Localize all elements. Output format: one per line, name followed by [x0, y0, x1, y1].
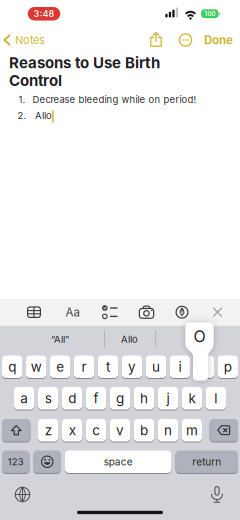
- button[interactable]: space: [65, 450, 171, 473]
- button[interactable]: Share: [150, 32, 162, 47]
- button[interactable]: return: [175, 450, 238, 473]
- button[interactable]: Screen recording 3:48: [28, 7, 60, 20]
- button[interactable]: Checklist: [97, 300, 121, 324]
- button[interactable]: Format: [60, 300, 84, 324]
- button[interactable]: “All”: [10, 325, 110, 353]
- staticText: return: [192, 456, 221, 468]
- button[interactable]: h: [134, 386, 154, 410]
- button[interactable]: Markup: [170, 300, 194, 324]
- staticText: y: [128, 359, 136, 375]
- button[interactable]: Emoji: [33, 450, 61, 473]
- button[interactable]: b: [134, 418, 154, 442]
- button[interactable]: Delete: [209, 418, 238, 442]
- button[interactable]: c: [86, 418, 106, 442]
- staticText: x: [69, 422, 76, 438]
- staticText: g: [116, 390, 124, 406]
- staticText: v: [116, 422, 124, 438]
- staticText: “All”: [51, 334, 69, 345]
- staticText: 100: [204, 10, 215, 18]
- staticText: Decrease bleeding while on period!: [32, 94, 196, 105]
- staticText: k: [188, 390, 195, 406]
- button[interactable]: v: [110, 418, 130, 442]
- staticText: l: [214, 390, 217, 406]
- staticText: 123: [8, 456, 24, 467]
- staticText: Aa: [65, 305, 79, 319]
- button[interactable]: z: [38, 418, 58, 442]
- staticText: u: [152, 359, 160, 375]
- button[interactable]: r: [74, 355, 94, 378]
- button[interactable]: l: [206, 386, 226, 410]
- staticText: c: [92, 422, 100, 438]
- button[interactable]: p: [217, 355, 238, 378]
- button[interactable]: Insert table: [22, 300, 46, 324]
- staticText: w: [31, 359, 42, 375]
- button[interactable]: g: [110, 386, 130, 410]
- button[interactable]: More: [178, 33, 192, 47]
- staticText: q: [8, 359, 16, 375]
- button[interactable]: i: [170, 355, 190, 378]
- staticText: f: [94, 390, 99, 406]
- staticText: Reasons to Use Birth Control: [9, 54, 160, 89]
- button[interactable]: x: [62, 418, 82, 442]
- button[interactable]: k: [182, 386, 202, 410]
- staticText: z: [45, 422, 52, 438]
- staticText: h: [140, 390, 148, 406]
- button[interactable]: s: [38, 386, 58, 410]
- button[interactable]: j: [158, 386, 178, 410]
- button[interactable]: Dismiss keyboard: [205, 300, 229, 324]
- staticText: t: [106, 359, 110, 375]
- staticText: Notes: [15, 33, 45, 46]
- staticText: a: [20, 390, 28, 406]
- staticText: d: [68, 390, 76, 406]
- button[interactable]: t: [98, 355, 118, 378]
- button[interactable]: w: [26, 355, 46, 378]
- button[interactable]: u: [146, 355, 166, 378]
- button[interactable]: Dictate: [204, 481, 230, 507]
- staticText: b: [140, 422, 148, 438]
- button[interactable]: Camera: [134, 300, 158, 324]
- staticText: m: [186, 422, 198, 438]
- staticText: 2.: [17, 110, 26, 121]
- button[interactable]: Next keyboard: [9, 481, 35, 507]
- button[interactable]: Back to Notes: [3, 28, 45, 52]
- button[interactable]: e: [50, 355, 70, 378]
- staticText: s: [45, 390, 52, 406]
- staticText: i: [178, 359, 181, 375]
- staticText: p: [224, 359, 232, 375]
- staticText: n: [164, 422, 172, 438]
- staticText: O: [194, 327, 206, 346]
- staticText: e: [56, 359, 64, 375]
- staticText: 1.: [18, 94, 25, 105]
- button[interactable]: q: [2, 355, 22, 378]
- button[interactable]: Shift: [2, 418, 30, 442]
- button[interactable]: Allo: [105, 325, 153, 353]
- button[interactable]: o: [0, 0, 240, 520]
- button[interactable]: f: [86, 386, 106, 410]
- staticText: Allo: [121, 334, 138, 345]
- staticText: j: [166, 390, 169, 406]
- button[interactable]: y: [122, 355, 142, 378]
- staticText: r: [82, 359, 87, 375]
- staticText: 3:48: [33, 8, 54, 19]
- staticText: space: [104, 456, 133, 468]
- staticText: Allo: [35, 110, 52, 121]
- staticText: Done: [204, 33, 233, 47]
- button[interactable]: d: [62, 386, 82, 410]
- button[interactable]: a: [14, 386, 34, 410]
- button[interactable]: 123: [2, 450, 29, 473]
- button[interactable]: m: [182, 418, 202, 442]
- button[interactable]: n: [158, 418, 178, 442]
- button[interactable]: Done: [204, 28, 233, 52]
